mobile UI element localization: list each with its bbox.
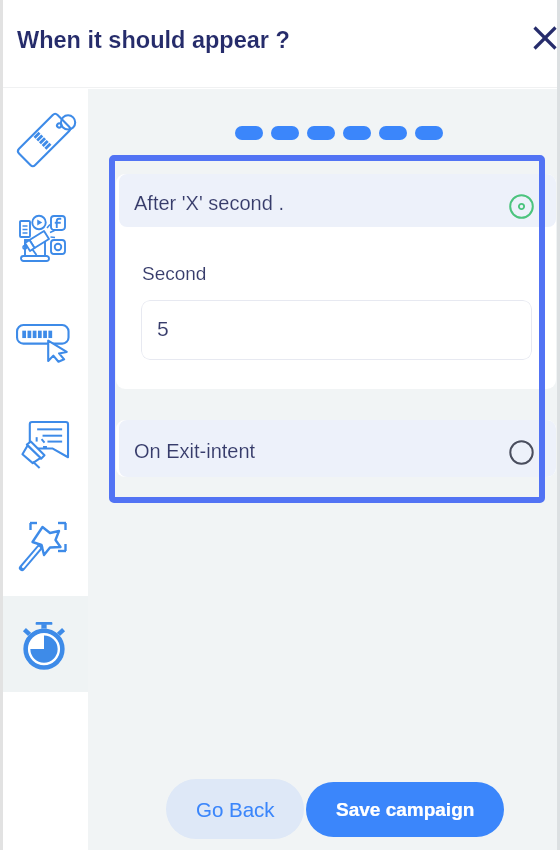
button[interactable]: Timing [0, 596, 88, 692]
staticText: 5 [157, 317, 169, 340]
staticText: Save campaign [336, 799, 475, 820]
button[interactable]: Campaign channels [0, 188, 88, 290]
staticText: Go Back [196, 798, 275, 821]
button[interactable]: On Exit-intent [119, 420, 556, 477]
button[interactable]: After 'X' second . [119, 174, 556, 227]
button[interactable]: Step 4 [343, 126, 371, 140]
button[interactable]: Step 2 [271, 126, 299, 140]
staticText: When it should appear ? [17, 27, 290, 53]
button[interactable]: Step 5 [379, 126, 407, 140]
button[interactable]: Message [0, 394, 88, 496]
button[interactable]: Step 1 [235, 126, 263, 140]
button[interactable]: Go Back [166, 779, 304, 839]
button[interactable]: Design [0, 496, 88, 596]
button[interactable]: Step 6 [415, 126, 443, 140]
staticText: After 'X' second . [134, 192, 284, 214]
button[interactable]: Call to action [0, 290, 88, 394]
button[interactable]: Save campaign [306, 782, 504, 837]
button[interactable]: Close [523, 16, 560, 60]
staticText: On Exit-intent [134, 440, 256, 462]
button[interactable]: Step 3 [307, 126, 335, 140]
button[interactable]: Brand [0, 91, 88, 188]
staticText: Second [142, 263, 207, 284]
button[interactable]: 5 [141, 300, 532, 360]
